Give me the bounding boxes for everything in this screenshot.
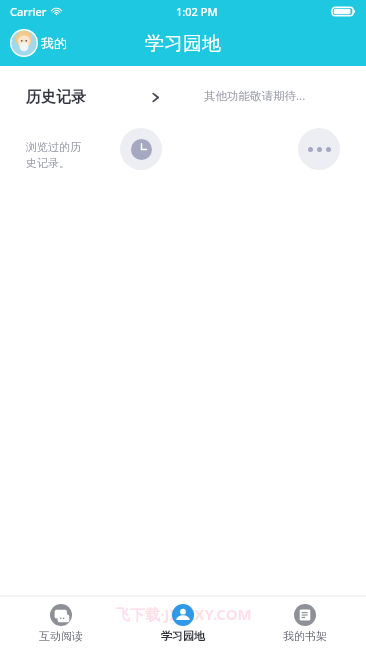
button[interactable]: 我的 xyxy=(8,27,69,59)
staticText: 我的书架 xyxy=(283,629,327,643)
other: 互动阅读 xyxy=(50,604,72,626)
button[interactable]: 我的书架 xyxy=(244,596,366,650)
staticText: 历史记录 xyxy=(26,88,86,107)
button[interactable]: 学习园地 xyxy=(122,596,244,650)
other: 学习园地 xyxy=(172,604,194,626)
staticText: 我的 xyxy=(41,35,67,51)
button[interactable]: 历史记录 xyxy=(12,75,176,183)
staticText: Carrier xyxy=(10,4,47,19)
staticText: 学习园地 xyxy=(161,629,205,643)
staticText: 飞下载·JIAZXY.COM xyxy=(115,604,252,624)
staticText: 1:02 PM xyxy=(176,4,218,19)
staticText: 浏览过的历 史记录。 xyxy=(26,140,81,170)
staticText: 学习园地 xyxy=(145,32,221,56)
other: 我的书架 xyxy=(294,604,316,626)
button[interactable]: 互动阅读 xyxy=(0,596,122,650)
button[interactable]: 其他功能敬请期待... xyxy=(190,75,354,183)
staticText: 其他功能敬请期待... xyxy=(204,88,306,104)
staticText: 互动阅读 xyxy=(39,629,83,643)
